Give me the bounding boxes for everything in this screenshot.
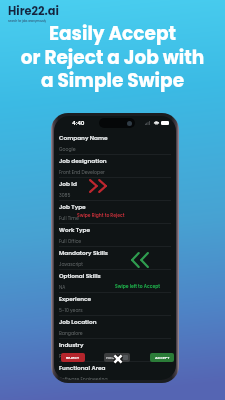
staticText: Experience (59, 295, 92, 303)
button[interactable]: Job designation (59, 158, 171, 181)
button[interactable]: HOLD (104, 353, 130, 362)
staticText: Functional Area (59, 364, 106, 372)
staticText: 3085 (59, 192, 71, 198)
staticText: Bangalore (59, 330, 83, 336)
button[interactable]: Functional Area (59, 365, 171, 380)
staticText: Hire22.ai (8, 3, 59, 19)
staticText: REJECT (66, 355, 80, 360)
staticText: Product (59, 353, 77, 359)
staticText: Job Location (59, 318, 97, 326)
staticText: 5-10 years (59, 307, 83, 313)
staticText: Mandatory Skills (59, 249, 108, 257)
button[interactable]: ACCEPT (150, 353, 174, 362)
staticText: Swipe left to Accept (115, 283, 160, 289)
button[interactable]: Job Location (59, 319, 171, 342)
button[interactable]: Work Type (59, 227, 171, 250)
staticText: Swipe Right to Reject (77, 212, 125, 218)
button[interactable]: Optional Skills (59, 273, 171, 296)
button[interactable]: Hire22.ai (8, 3, 59, 23)
staticText: Job designation (59, 157, 107, 165)
button[interactable]: Job Type (59, 204, 171, 227)
button[interactable]: Job Id (59, 181, 171, 204)
staticText: HOLD (106, 355, 116, 360)
staticText: Full Time (59, 215, 79, 221)
staticText: Full Office (59, 238, 82, 244)
staticText: NA (59, 284, 66, 290)
staticText: Software Engineering (59, 376, 108, 380)
button[interactable]: REJECT (61, 353, 85, 362)
other: Close (113, 354, 123, 364)
staticText: ACCEPT (155, 355, 170, 360)
button[interactable]: Industry (59, 342, 171, 365)
staticText: 4:40 (72, 119, 85, 127)
staticText: Search for jobs anonymously (8, 19, 47, 23)
button[interactable]: Company Name (59, 135, 171, 158)
staticText: Work Type (59, 226, 91, 234)
staticText: Job Id (59, 180, 77, 188)
button[interactable]: Mandatory Skills (59, 250, 171, 273)
staticText: Easily Accept or Reject a Job with a Sim… (0, 21, 225, 93)
staticText: Job Type (59, 203, 86, 211)
staticText: Javascript (59, 261, 84, 267)
staticText: Front End Developer (59, 169, 105, 175)
staticText: Company Name (59, 134, 108, 142)
staticText: Optional Skills (59, 272, 101, 280)
staticText: Industry (59, 341, 84, 349)
button[interactable]: Experience (59, 296, 171, 319)
staticText: Google (59, 146, 76, 152)
